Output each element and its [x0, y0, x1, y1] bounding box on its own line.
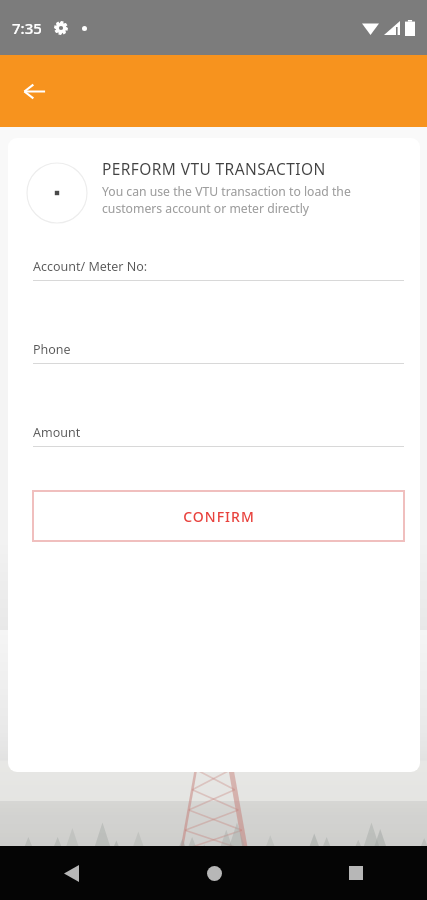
- button[interactable]: Amount: [33, 424, 404, 447]
- button[interactable]: CONFIRM: [32, 490, 405, 542]
- staticText: You can use the VTU transaction to load …: [102, 183, 406, 217]
- button[interactable]: Phone: [33, 341, 404, 364]
- button[interactable]: Account/ Meter No:: [33, 258, 404, 281]
- button[interactable]: Back: [0, 846, 143, 900]
- staticText: 7:35: [12, 18, 42, 38]
- staticText: Amount: [33, 424, 81, 441]
- staticText: CONFIRM: [183, 507, 255, 526]
- staticText: Phone: [33, 341, 71, 358]
- button[interactable]: Recent apps: [285, 846, 427, 900]
- staticText: Account/ Meter No:: [33, 258, 148, 275]
- button[interactable]: Home: [143, 846, 285, 900]
- button[interactable]: Back: [10, 67, 58, 115]
- staticText: PERFORM VTU TRANSACTION: [102, 158, 326, 179]
